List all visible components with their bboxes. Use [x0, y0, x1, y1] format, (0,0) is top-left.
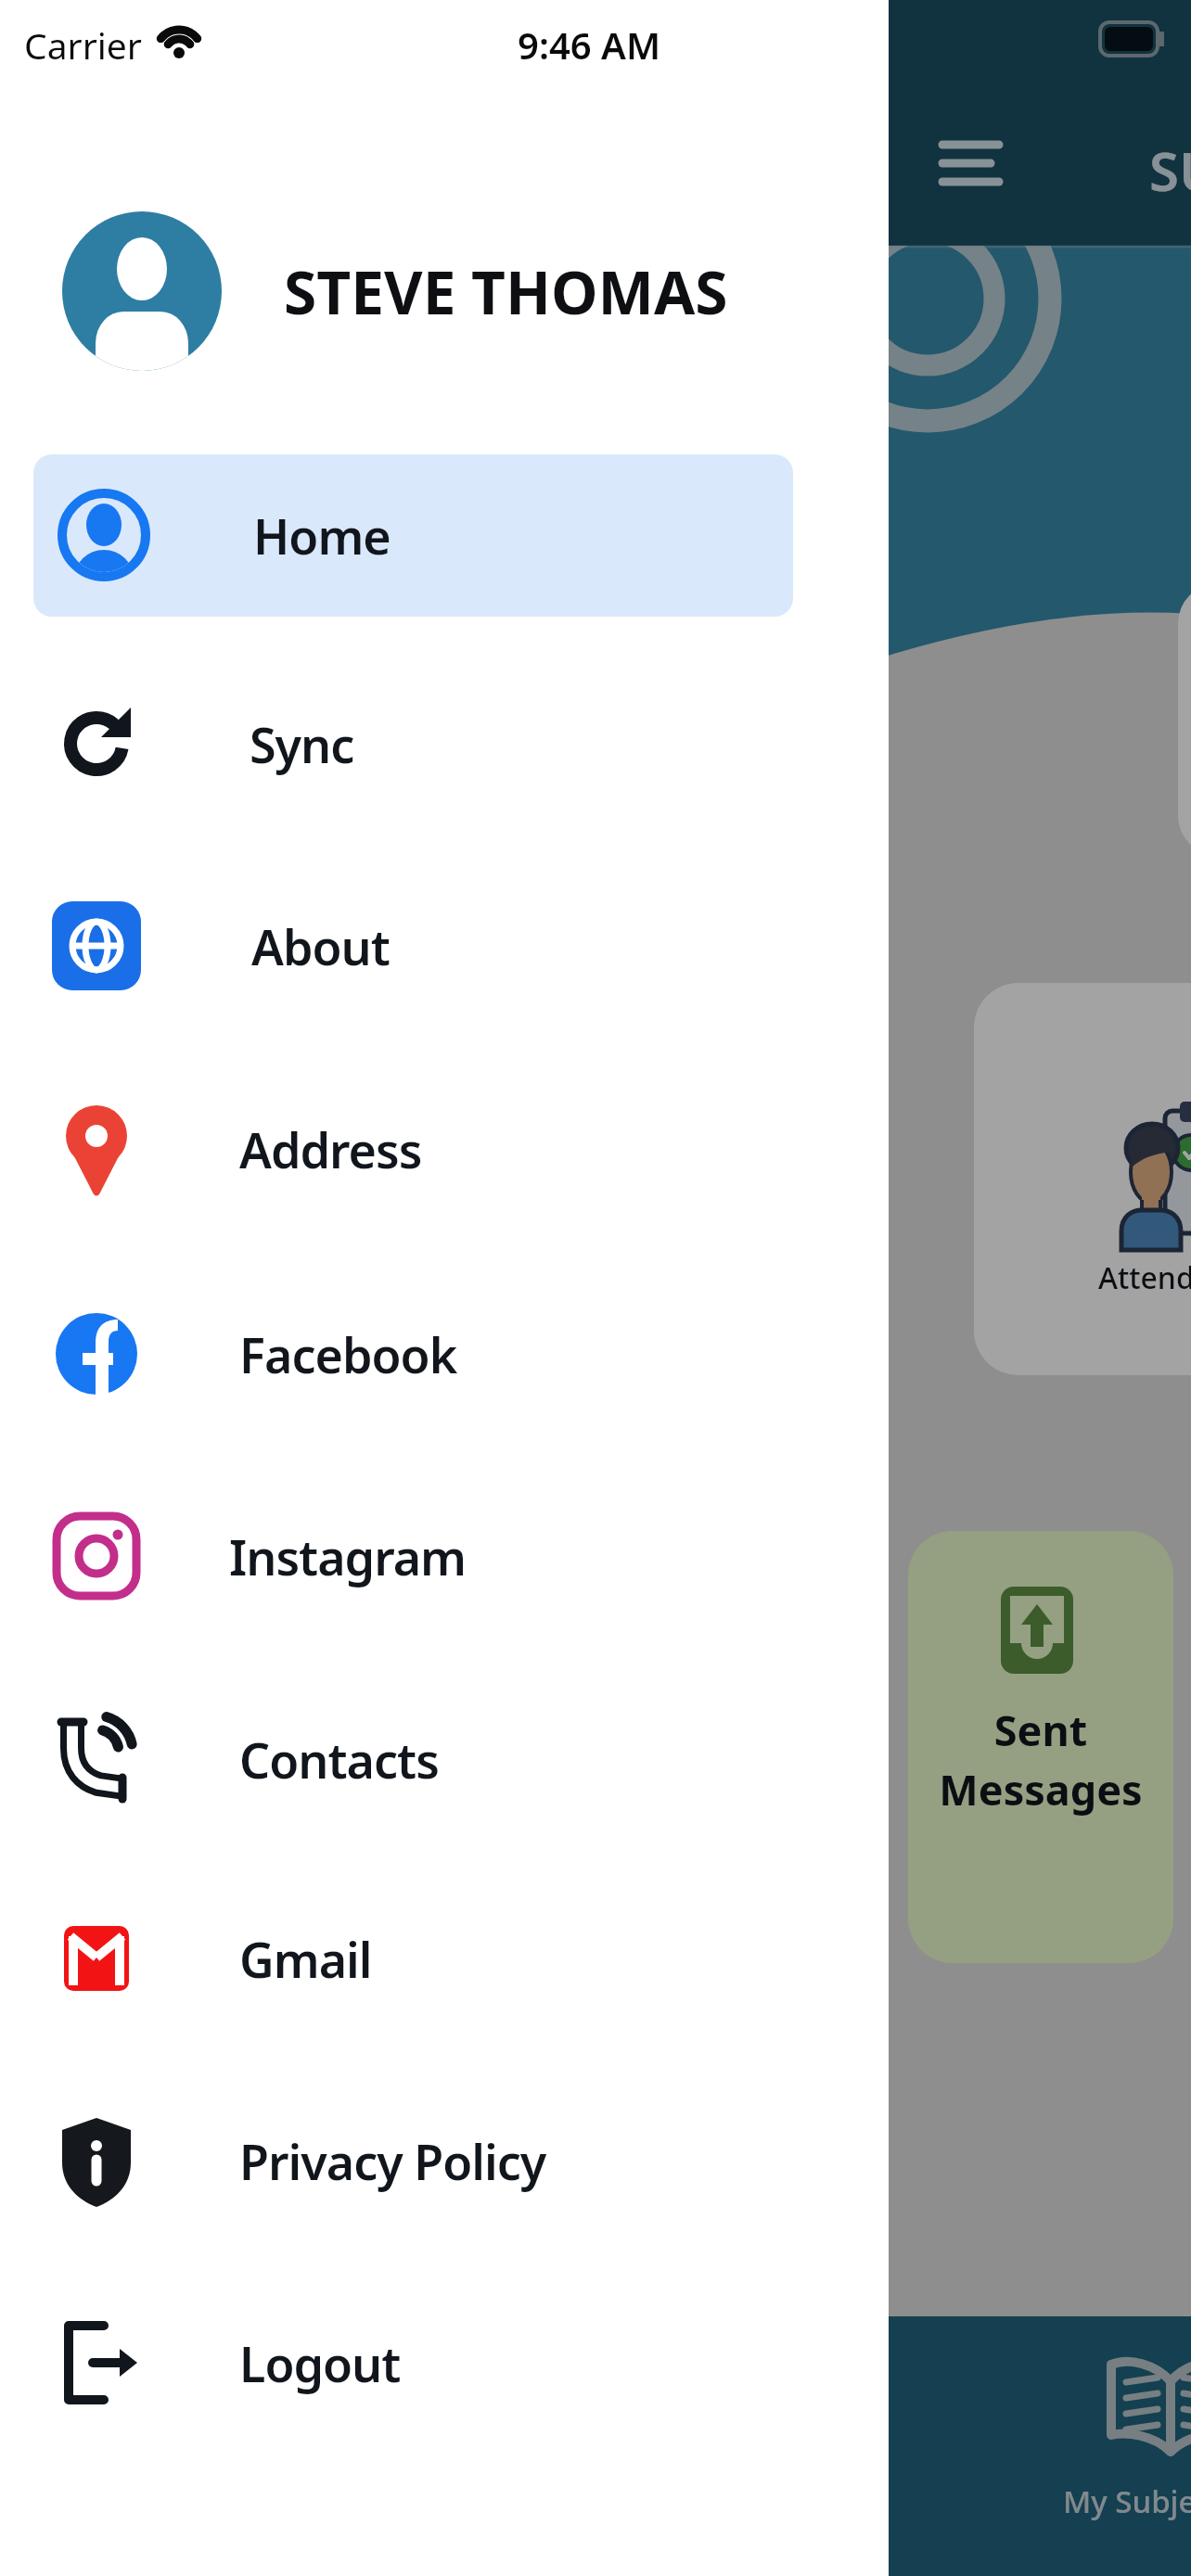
button[interactable]: My Subjects	[0, 2316, 1191, 2576]
button[interactable]: Attendance	[974, 983, 1191, 1375]
button[interactable]	[1178, 584, 1191, 855]
button[interactable]: Instagram	[0, 1475, 889, 1637]
button[interactable]: Sent	[908, 1531, 1173, 1963]
staticText: SUBJECTS	[1149, 134, 1191, 207]
button[interactable]: About	[0, 865, 889, 1027]
staticText: Instagram	[229, 1524, 467, 1589]
staticText: Carrier	[24, 20, 142, 70]
staticText: Address	[239, 1116, 422, 1182]
staticText: Logout	[239, 2330, 401, 2396]
staticText: STEVE THOMAS	[284, 251, 728, 332]
staticText: Sent	[908, 1702, 1173, 1758]
button[interactable]: Sync	[0, 663, 889, 824]
button[interactable]: Logout	[0, 2282, 889, 2443]
staticText: Attendance	[1098, 1257, 1191, 1298]
staticText: Sync	[250, 711, 354, 777]
button[interactable]: Address	[0, 1068, 889, 1230]
staticText: Messages	[908, 1761, 1173, 1817]
button[interactable]	[915, 111, 1026, 213]
button[interactable]: Home	[33, 454, 793, 617]
staticText: About	[251, 913, 390, 979]
button[interactable]: Facebook	[0, 1273, 889, 1435]
button[interactable]: Contacts	[0, 1678, 889, 1840]
button[interactable]: Privacy Policy	[0, 2080, 889, 2241]
staticText: Home	[253, 503, 391, 568]
staticText: Privacy Policy	[239, 2128, 546, 2194]
staticText: Gmail	[239, 1926, 372, 1992]
staticText: Contacts	[239, 1727, 439, 1792]
staticText: 9:46 AM	[518, 19, 661, 70]
staticText: Facebook	[239, 1321, 457, 1387]
staticText: My Subjects	[1063, 2480, 1191, 2522]
button[interactable]: Gmail	[0, 1878, 889, 2039]
